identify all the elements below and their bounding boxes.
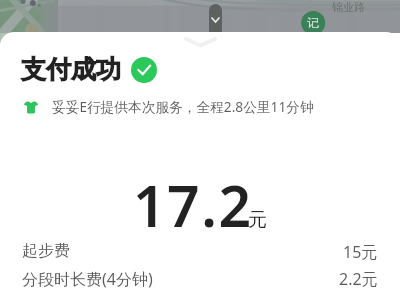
button[interactable]: Collapse map bbox=[209, 4, 222, 32]
staticText: 17.2 bbox=[133, 166, 253, 244]
staticText: 锦业路 bbox=[332, 0, 365, 14]
staticText: 支付成功 bbox=[21, 54, 121, 85]
staticText: 15元 bbox=[343, 241, 378, 263]
staticText: 记 bbox=[307, 15, 319, 30]
staticText: 元 bbox=[248, 208, 267, 232]
staticText: 2.2元 bbox=[339, 268, 378, 290]
staticText: 妥妥E行提供本次服务，全程2.8公里11分钟 bbox=[52, 97, 314, 116]
staticText: 分段时长费(4分钟) bbox=[22, 268, 153, 290]
staticText: 起步费 bbox=[22, 241, 70, 261]
